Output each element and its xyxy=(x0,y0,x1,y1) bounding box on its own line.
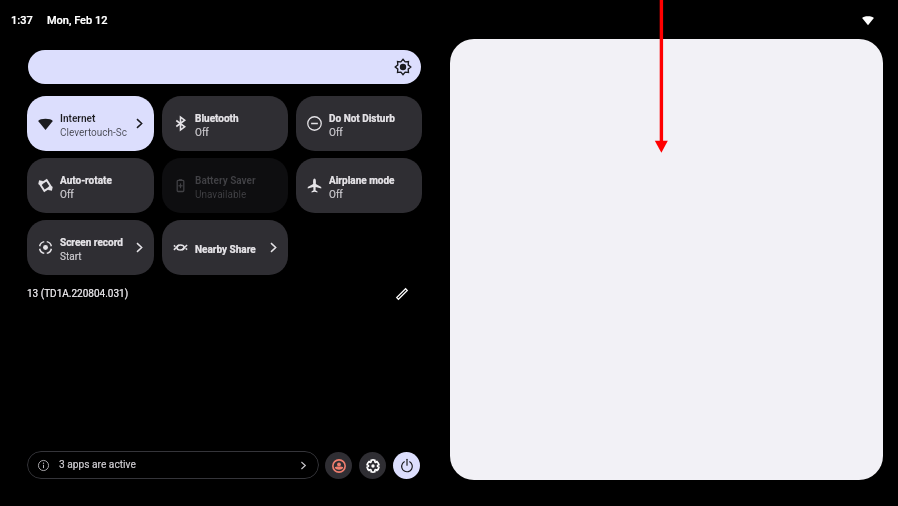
staticText: Bluetooth xyxy=(195,113,239,125)
staticText: Clevertouch-Sc xyxy=(60,127,127,139)
staticText: Screen record xyxy=(60,237,123,249)
button[interactable]: Power xyxy=(393,452,420,479)
staticText: Airplane mode xyxy=(329,175,395,187)
button[interactable]: Airplane mode xyxy=(296,158,422,213)
button[interactable]: Account xyxy=(325,452,352,479)
button[interactable]: Edit xyxy=(391,283,413,305)
staticText: 13 (TD1A.220804.031) xyxy=(27,288,129,300)
staticText: Internet xyxy=(60,113,96,125)
button[interactable] xyxy=(28,50,421,84)
button[interactable]: Bluetooth xyxy=(162,96,288,151)
button[interactable]: Settings xyxy=(359,452,386,479)
button[interactable]: Do Not Disturb xyxy=(296,96,422,151)
button[interactable]: Battery Saver xyxy=(162,158,288,213)
staticText: Auto-rotate xyxy=(60,175,112,187)
staticText: Start xyxy=(60,251,82,263)
button[interactable]: Internet xyxy=(27,96,154,151)
staticText: Battery Saver xyxy=(195,175,256,187)
staticText: Do Not Disturb xyxy=(329,113,395,125)
button[interactable]: Nearby Share xyxy=(162,220,288,275)
staticText: Mon, Feb 12 xyxy=(47,14,108,27)
button[interactable]: Auto-rotate xyxy=(27,158,154,213)
staticText: Off xyxy=(329,189,343,201)
staticText: Nearby Share xyxy=(195,244,256,256)
button[interactable]: 3 apps are active xyxy=(27,451,319,479)
staticText: 3 apps are active xyxy=(59,459,136,471)
staticText: 1:37 xyxy=(11,14,33,27)
staticText: Off xyxy=(329,127,343,139)
staticText: Off xyxy=(195,127,209,139)
staticText: Off xyxy=(60,189,74,201)
staticText: Unavailable xyxy=(195,189,247,201)
button[interactable]: Screen record xyxy=(27,220,154,275)
